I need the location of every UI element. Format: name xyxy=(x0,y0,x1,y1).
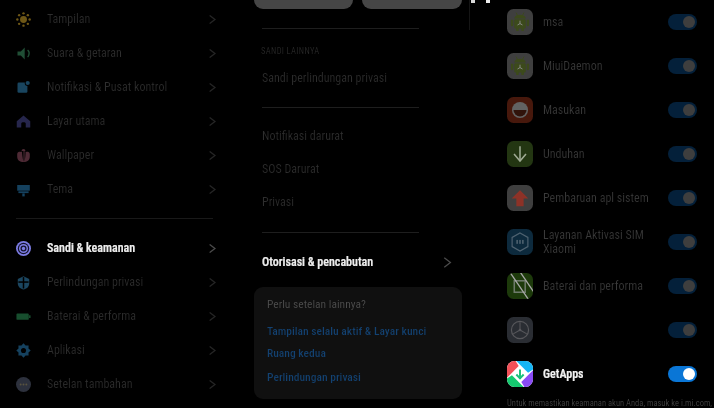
button[interactable]: GetApps xyxy=(469,352,714,396)
staticText: MiuiDaemon xyxy=(543,59,668,73)
button[interactable]: Toggle permission xyxy=(668,58,697,74)
button[interactable] xyxy=(362,0,462,9)
button[interactable]: Notifikasi darurat xyxy=(240,119,470,153)
staticText: Wallpaper xyxy=(47,148,95,162)
staticText: Notifikasi darurat xyxy=(262,129,344,143)
button[interactable]: Perlindungan privasi xyxy=(267,370,361,383)
button[interactable]: Toggle permission xyxy=(668,146,697,162)
button[interactable]: Pembaruan apl sistem xyxy=(469,176,714,220)
staticText: Aplikasi xyxy=(47,343,85,357)
button[interactable]: Sandi & keamanan xyxy=(0,231,240,265)
staticText: Layanan Aktivasi SIM Xiaomi xyxy=(543,228,668,256)
button[interactable]: Suara & getaran xyxy=(0,36,240,70)
staticText: Sandi perlindungan privasi xyxy=(262,71,387,85)
staticText: Perlindungan privasi xyxy=(47,275,144,289)
staticText: SOS Darurat xyxy=(262,162,320,176)
button[interactable]: Aplikasi xyxy=(0,333,240,367)
staticText: Otorisasi & pencabutan xyxy=(262,255,374,269)
staticText: Baterai & performa xyxy=(47,309,136,323)
staticText: Untuk memastikan keamanan akun Anda, mas… xyxy=(507,398,714,408)
staticText: Privasi xyxy=(262,195,295,209)
button[interactable]: Tampilan selalu aktif & Layar kunci xyxy=(267,324,427,337)
staticText: Suara & getaran xyxy=(47,46,122,60)
staticText: Tema xyxy=(47,182,74,196)
button[interactable]: msa xyxy=(469,0,714,44)
button[interactable]: Baterai & performa xyxy=(0,299,240,333)
button[interactable]: Privasi xyxy=(240,185,470,219)
button[interactable]: Unduhan xyxy=(469,132,714,176)
button[interactable]: Toggle permission xyxy=(668,102,697,118)
button[interactable]: Layar utama xyxy=(0,104,240,138)
button[interactable]: SOS Darurat xyxy=(240,152,470,186)
staticText: Pembaruan apl sistem xyxy=(543,191,668,205)
staticText: Masukan xyxy=(543,103,668,117)
button[interactable]: Toggle permission xyxy=(668,234,697,250)
button[interactable]: Otorisasi & pencabutan xyxy=(240,245,470,279)
button[interactable]: Toggle permission xyxy=(469,308,714,352)
button[interactable]: Perlindungan privasi xyxy=(0,265,240,299)
button[interactable]: Tema xyxy=(0,172,240,206)
button[interactable] xyxy=(254,0,353,9)
button[interactable]: Layanan Aktivasi SIM Xiaomi xyxy=(469,220,714,264)
button[interactable]: MiuiDaemon xyxy=(469,44,714,88)
button[interactable]: Sandi perlindungan privasi xyxy=(240,61,470,95)
button[interactable]: Baterai dan performa xyxy=(469,264,714,308)
staticText: Layar utama xyxy=(47,114,106,128)
button[interactable]: Tampilan xyxy=(0,2,240,36)
staticText: Perlu setelan lainnya? xyxy=(267,297,366,310)
staticText: Unduhan xyxy=(543,147,668,161)
button[interactable]: Ruang kedua xyxy=(267,346,326,359)
staticText: Tampilan xyxy=(47,12,91,26)
staticText: SANDI LAINNYA xyxy=(261,46,320,56)
button[interactable]: Toggle permission xyxy=(668,366,697,382)
button[interactable]: Notifikasi & Pusat kontrol xyxy=(0,70,240,104)
staticText: Setelan tambahan xyxy=(47,377,133,391)
button[interactable]: Toggle permission xyxy=(668,190,697,206)
button[interactable]: Wallpaper xyxy=(0,138,240,172)
staticText: Baterai dan performa xyxy=(543,279,668,293)
staticText: GetApps xyxy=(543,367,668,381)
button[interactable]: Toggle permission xyxy=(668,278,697,294)
button[interactable]: Masukan xyxy=(469,88,714,132)
button[interactable]: Toggle permission xyxy=(668,322,697,338)
staticText: Notifikasi & Pusat kontrol xyxy=(47,80,168,94)
staticText: msa xyxy=(543,15,668,29)
button[interactable]: Toggle permission xyxy=(668,14,697,30)
staticText: Sandi & keamanan xyxy=(47,241,136,255)
button[interactable]: Setelan tambahan xyxy=(0,367,240,401)
